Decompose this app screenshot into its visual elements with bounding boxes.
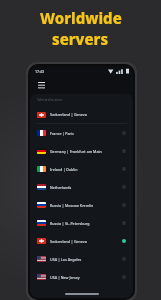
staticText: 17:43 bbox=[35, 69, 44, 74]
button[interactable]: Ireland | Dublin bbox=[30, 160, 133, 178]
staticText: servers bbox=[52, 29, 109, 49]
staticText: USA | New Jersey bbox=[50, 275, 80, 280]
staticText: Selected location bbox=[37, 98, 63, 102]
button[interactable]: Open navigation menu bbox=[35, 79, 47, 91]
staticText: Ireland | Dublin bbox=[50, 167, 78, 172]
staticText: USA | Los Angeles bbox=[50, 257, 82, 262]
button[interactable]: Germany | Frankfurt am Main bbox=[30, 142, 133, 160]
staticText: Germany | Frankfurt am Main bbox=[50, 149, 102, 154]
staticText: Netherlands bbox=[50, 185, 72, 190]
button[interactable]: Switzerland | Geneva bbox=[30, 232, 133, 250]
staticText: Switzerland | Geneva bbox=[50, 112, 87, 117]
staticText: France | Paris bbox=[50, 131, 74, 136]
button[interactable]: USA | New Jersey bbox=[30, 268, 133, 286]
button[interactable]: Switzerland | Geneva bbox=[30, 106, 133, 123]
button[interactable]: USA | Los Angeles bbox=[30, 250, 133, 268]
staticText: Worldwide bbox=[40, 8, 122, 28]
button[interactable]: France | Paris bbox=[30, 124, 133, 142]
staticText: Switzerland | Geneva bbox=[50, 239, 87, 244]
button[interactable]: Russia | Moscow Kremlin bbox=[30, 196, 133, 214]
button[interactable]: Russia | St.-Petersburg bbox=[30, 214, 133, 232]
staticText: Russia | St.-Petersburg bbox=[50, 221, 90, 226]
staticText: Russia | Moscow Kremlin bbox=[50, 203, 94, 208]
button[interactable]: Netherlands bbox=[30, 178, 133, 196]
